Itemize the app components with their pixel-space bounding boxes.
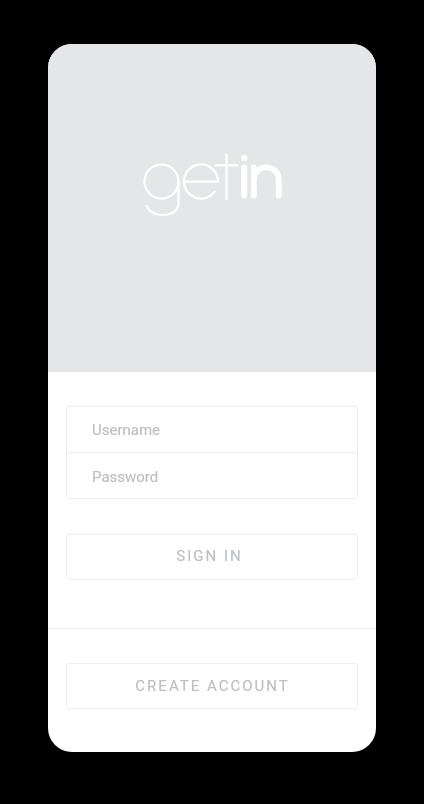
staticText: SIGN IN — [176, 547, 243, 565]
staticText: Password — [92, 468, 159, 486]
button[interactable]: Username — [66, 406, 358, 452]
button[interactable]: SIGN IN — [66, 534, 358, 580]
button[interactable]: Password — [66, 453, 358, 499]
staticText: Username — [92, 421, 161, 439]
button[interactable]: CREATE ACCOUNT — [66, 663, 358, 709]
staticText: CREATE ACCOUNT — [135, 677, 290, 695]
